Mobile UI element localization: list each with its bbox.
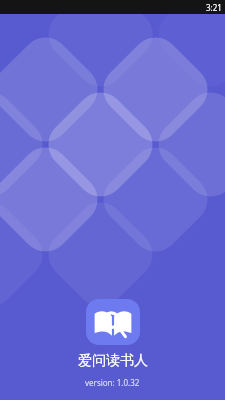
staticText: 爱问读书人 [78, 352, 148, 370]
staticText: 3:21 [206, 2, 222, 13]
staticText: version: 1.0.32 [85, 377, 140, 388]
